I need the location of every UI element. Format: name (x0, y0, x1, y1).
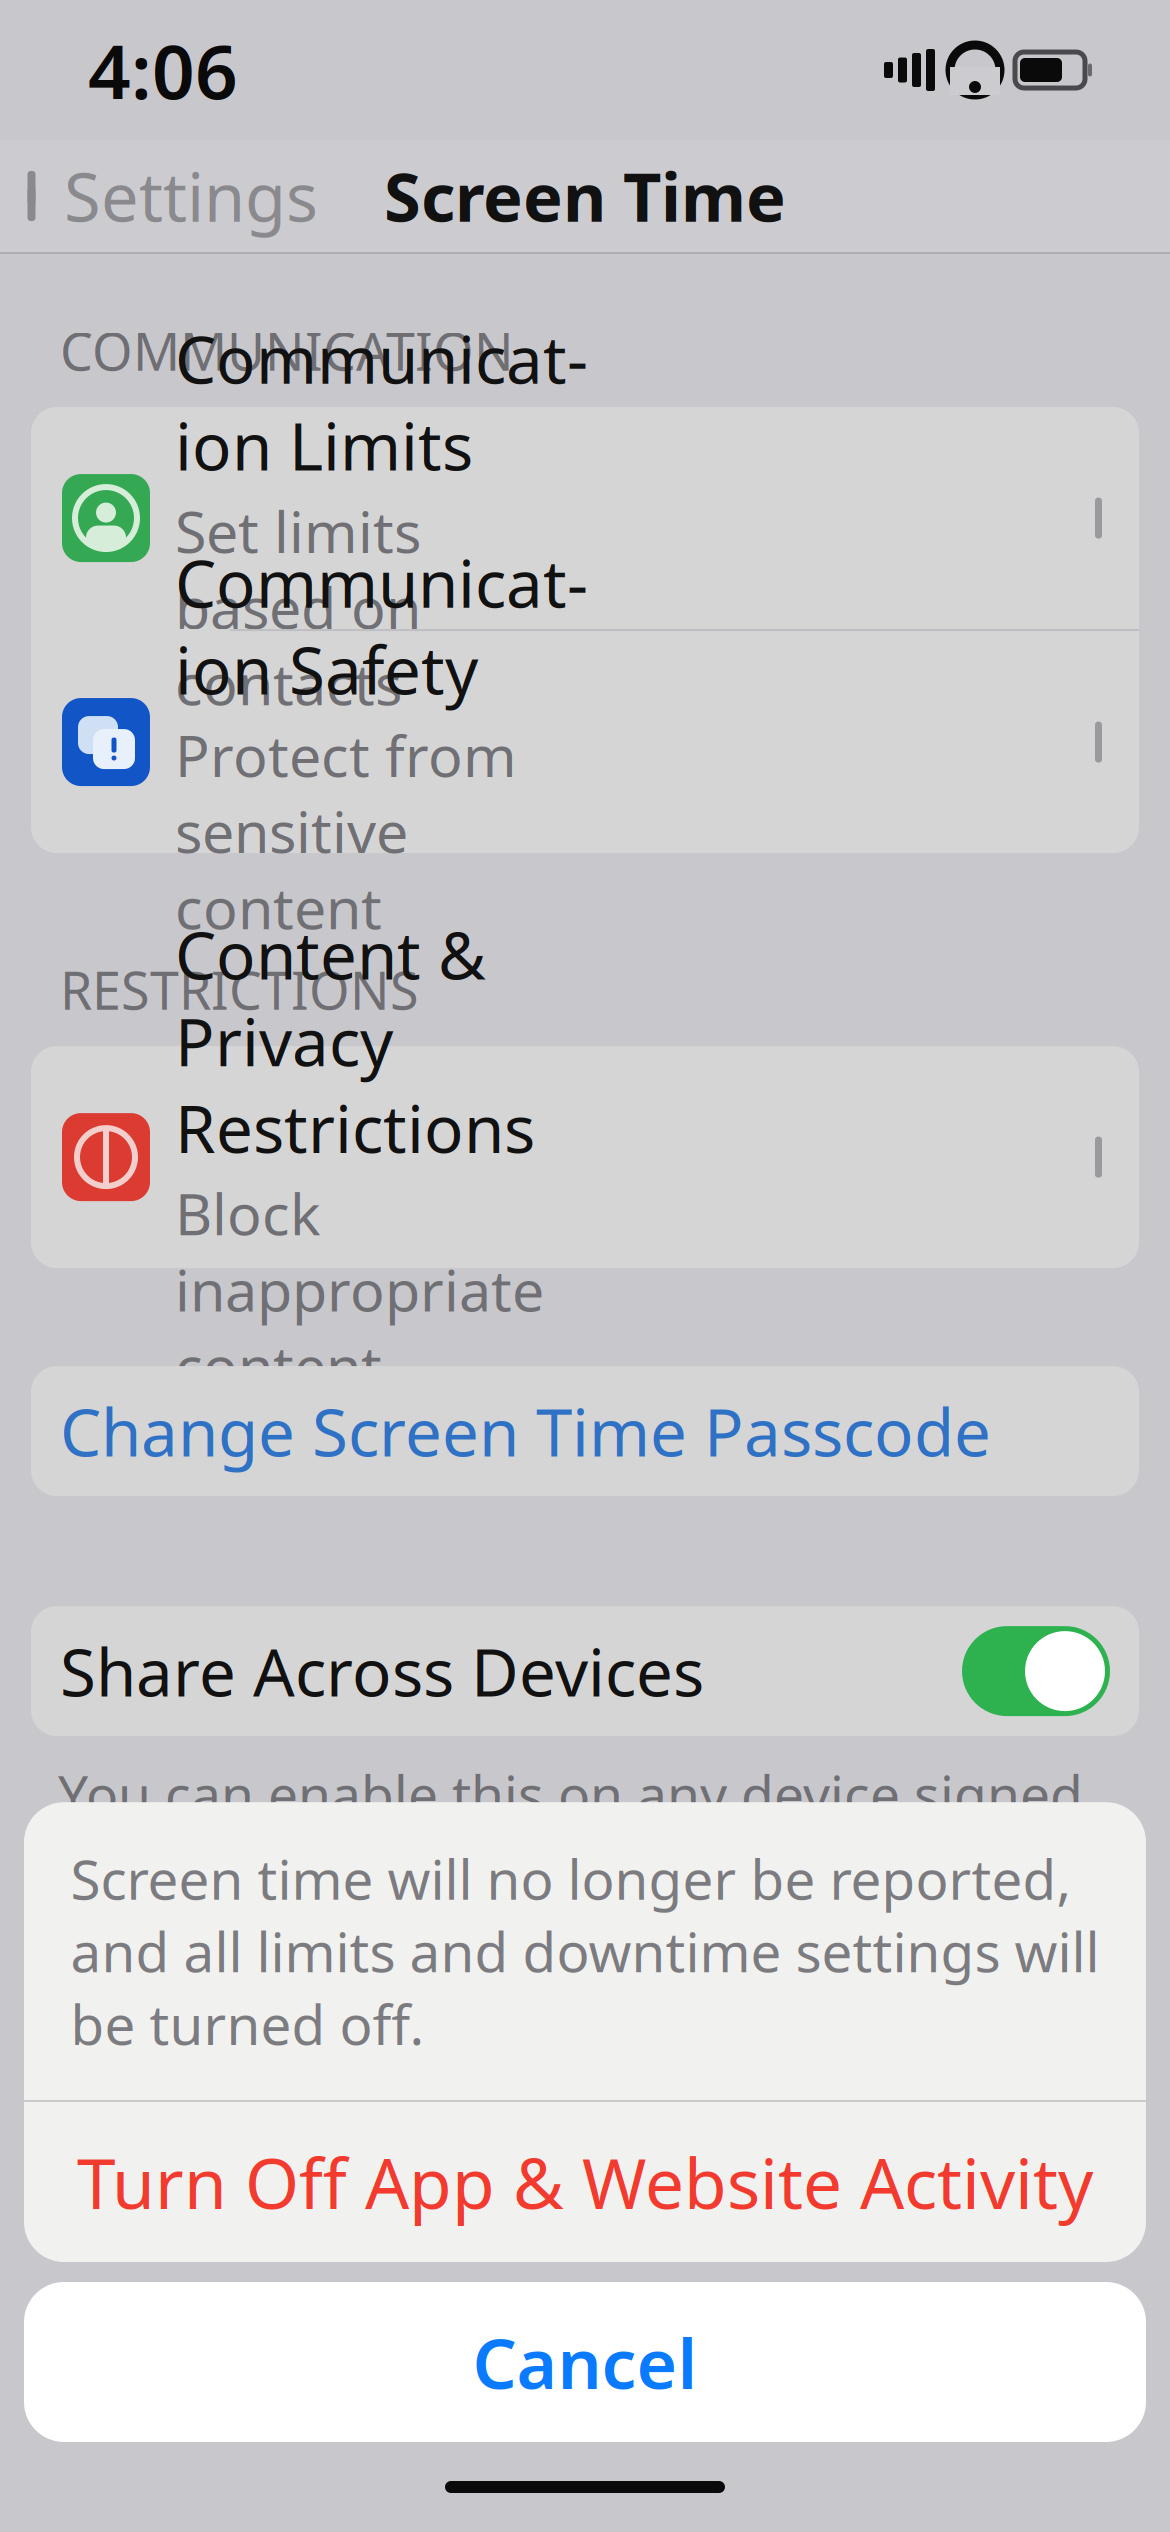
staticText: RESTRICTIONS (60, 955, 419, 1024)
staticText: 4:06 (88, 20, 238, 120)
staticText: Share Across Devices (60, 1628, 704, 1714)
button[interactable]: Set Up Screen Time for Family (31, 2049, 1139, 2179)
staticText: Cancel (472, 2316, 697, 2408)
staticText: You can enable this on any device signed… (58, 1758, 1083, 1971)
button[interactable]: Settings (0, 134, 318, 258)
button[interactable]: Change Screen Time Passcode (31, 1366, 1139, 1496)
staticText: Block inappropriate content (175, 1175, 544, 1403)
staticText: COMMUNICATION (60, 316, 514, 385)
staticText: Set Up Screen Time for Family (60, 2070, 976, 2157)
staticText: Turn Off App & Website Activity (77, 2136, 1093, 2228)
staticText: Protect from sensitive content (175, 717, 517, 945)
button[interactable]: Share Across Devices (31, 1606, 1139, 1736)
button[interactable]: Cancel (24, 2282, 1146, 2442)
staticText: Settings (64, 152, 318, 240)
button[interactable]: Turn Off App & Website Activity (24, 2102, 1146, 2262)
staticText: Screen time will no longer be reported, … (70, 1842, 1099, 2060)
staticText: Communication Safety (175, 539, 588, 713)
button[interactable]: Communication Limits (31, 407, 1139, 629)
button[interactable]: Communication Safety (31, 631, 1139, 853)
staticText: Content & Privacy Restrictions (175, 911, 535, 1171)
button[interactable]: Content & Privacy Restrictions (31, 1046, 1139, 1268)
staticText: Communication Limits (175, 315, 588, 489)
staticText: Change Screen Time Passcode (60, 1388, 991, 1474)
staticText: Screen Time (384, 152, 786, 240)
staticText: Set limits based on contacts (175, 493, 421, 721)
